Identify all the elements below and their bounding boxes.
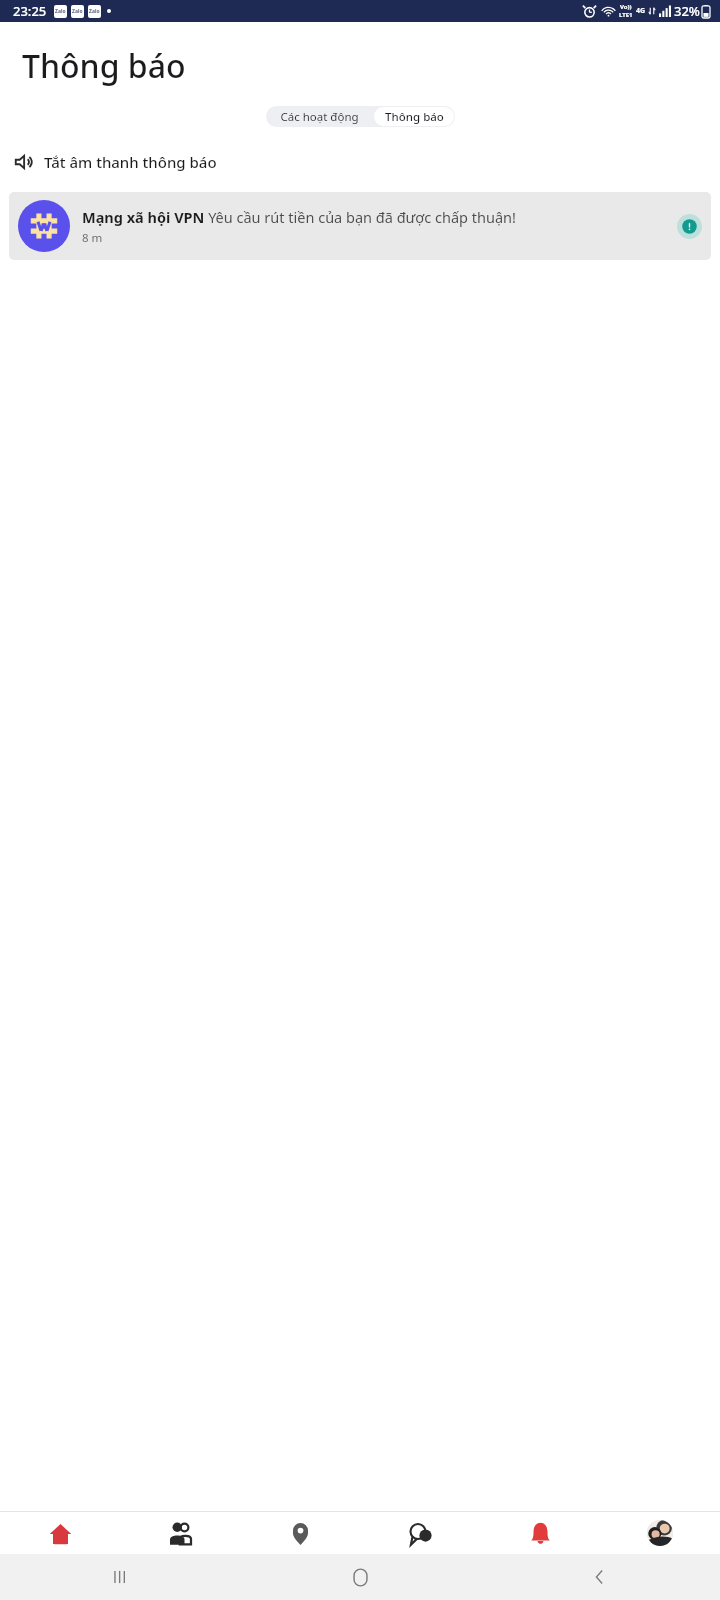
- staticText: Zalo: [89, 8, 100, 15]
- button[interactable]: Vị trí: [240, 1512, 360, 1554]
- button[interactable]: Mạng xã hội VPN Yêu cầu rút tiền của bạn…: [9, 192, 711, 260]
- button[interactable]: Tắt âm thanh thông báo: [14, 149, 706, 175]
- button[interactable]: Recents: [0, 1554, 240, 1600]
- button[interactable]: Thông báo: [374, 107, 454, 126]
- button[interactable]: Thông tin cảnh báo: [677, 214, 702, 239]
- staticText: Vo)): [620, 3, 632, 11]
- staticText: Thông báo: [385, 109, 444, 125]
- staticText: 8 m: [82, 230, 103, 246]
- staticText: 4G: [636, 6, 646, 16]
- button[interactable]: Bạn bè: [120, 1512, 240, 1554]
- button[interactable]: Trang cá nhân: [600, 1512, 720, 1554]
- staticText: 23:25: [13, 2, 47, 20]
- staticText: Mạng xã hội VPN Yêu cầu rút tiền của bạn…: [82, 207, 516, 227]
- staticText: 32%: [674, 2, 700, 20]
- button[interactable]: Các hoạt động: [266, 106, 373, 127]
- staticText: Thông báo: [22, 44, 186, 88]
- staticText: Các hoạt động: [280, 109, 359, 125]
- button[interactable]: Trang chủ: [0, 1512, 120, 1554]
- button[interactable]: Thông báo: [480, 1512, 600, 1554]
- button[interactable]: Tin nhắn: [360, 1512, 480, 1554]
- staticText: LTE1: [619, 11, 633, 19]
- staticText: Zalo: [55, 8, 66, 15]
- button[interactable]: Home: [240, 1554, 480, 1600]
- button[interactable]: Back: [480, 1554, 720, 1600]
- staticText: Tắt âm thanh thông báo: [44, 152, 217, 172]
- staticText: Zalo: [72, 8, 83, 15]
